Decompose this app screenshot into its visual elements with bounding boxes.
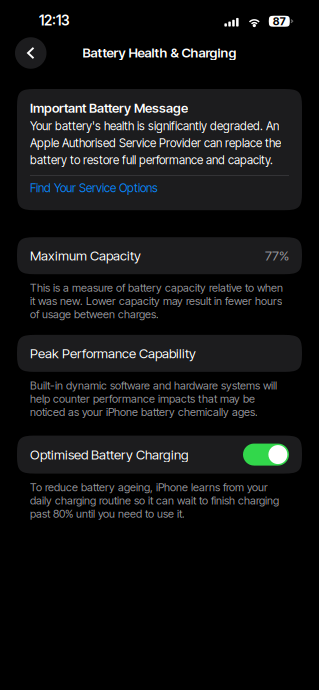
staticText: 12:13 xyxy=(39,12,70,29)
staticText: This is a measure of battery capacity re… xyxy=(30,281,283,321)
button[interactable]: Back xyxy=(15,37,46,69)
staticText: 87 xyxy=(273,15,286,28)
staticText: Find Your Service Options xyxy=(30,181,158,195)
button[interactable]: Find Your Service Options xyxy=(30,181,289,195)
staticText: Maximum Capacity xyxy=(30,248,141,264)
staticText: Built-in dynamic software and hardware s… xyxy=(30,379,277,419)
staticText: Your battery's health is significantly d… xyxy=(30,119,281,167)
staticText: Optimised Battery Charging xyxy=(30,446,189,463)
staticText: 77% xyxy=(265,248,289,264)
staticText: To reduce battery ageing, iPhone learns … xyxy=(30,481,279,520)
button[interactable]: Optimised Battery Charging xyxy=(17,436,302,474)
staticText: Peak Performance Capability xyxy=(30,345,196,361)
staticText: Battery Health & Charging xyxy=(82,44,236,61)
button[interactable]: Peak Performance Capability xyxy=(17,335,302,372)
button[interactable]: Maximum Capacity xyxy=(17,237,302,274)
staticText: Important Battery Message xyxy=(30,100,188,116)
